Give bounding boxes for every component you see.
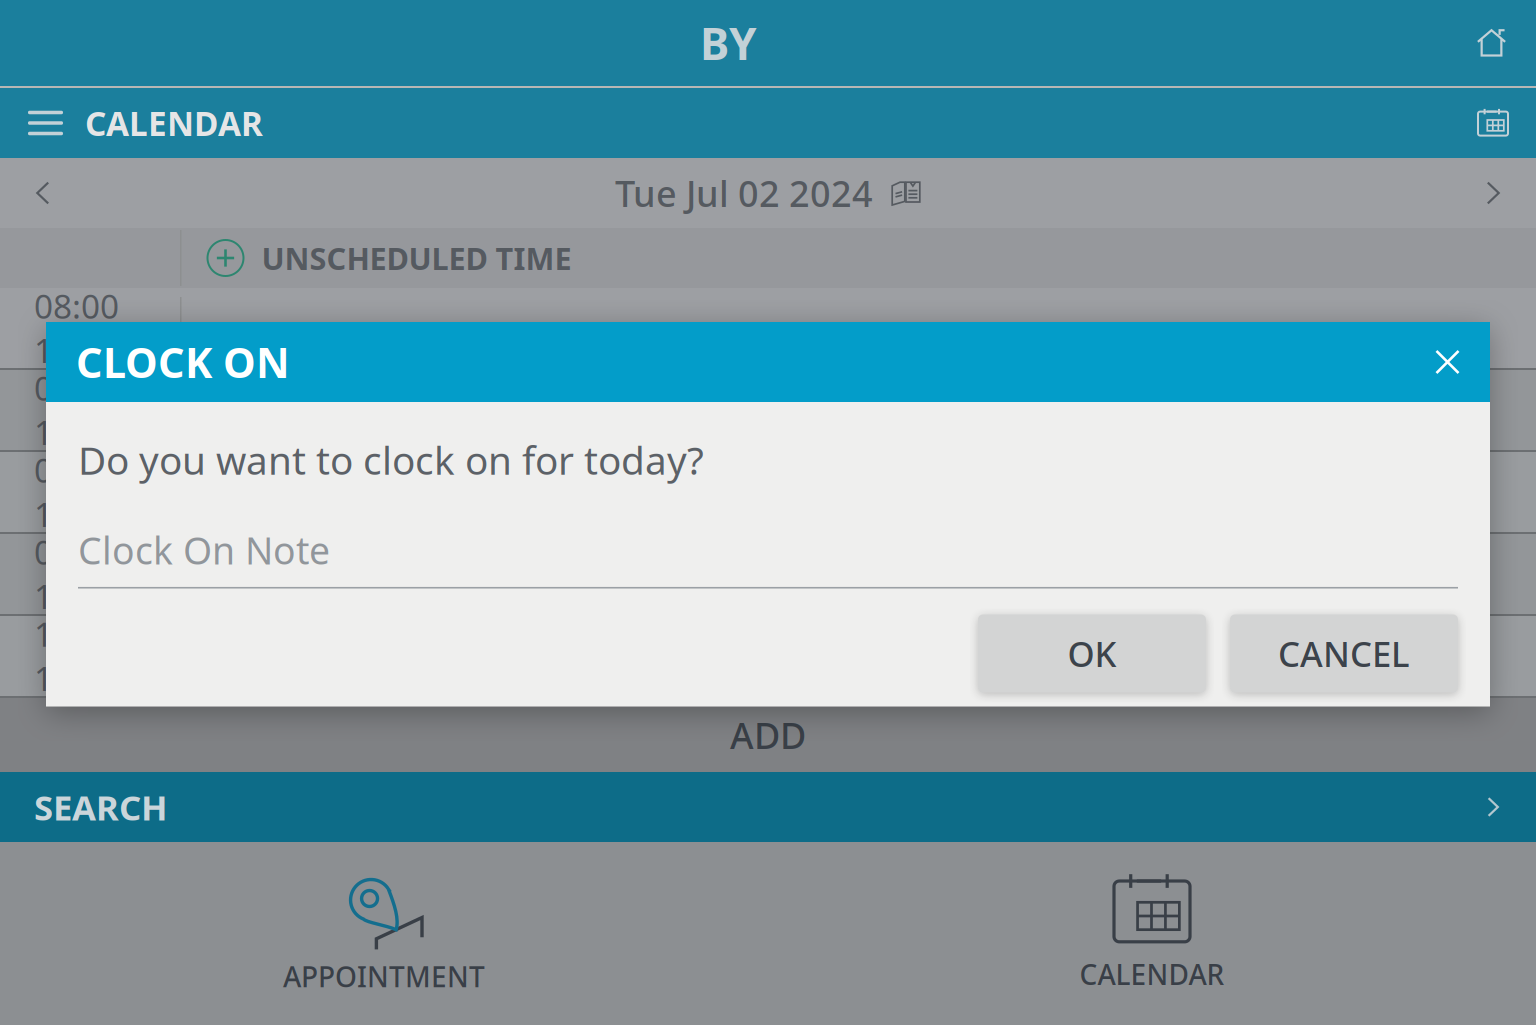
button[interactable]: CANCEL: [1230, 614, 1458, 692]
staticText: SEARCH: [34, 784, 168, 830]
button[interactable]: Expand search: [1462, 772, 1536, 842]
staticText: CALENDAR: [1079, 956, 1224, 993]
staticText: UNSCHEDULED TIME: [261, 238, 571, 278]
staticText: Do you want to clock on for today?: [78, 434, 704, 485]
button[interactable]: CALENDAR: [768, 874, 1536, 993]
button[interactable]: Previous day: [0, 158, 78, 228]
staticText: 16:30: [34, 328, 119, 372]
button[interactable]: Add unscheduled time: [181, 224, 261, 292]
staticText: APPOINTMENT: [283, 958, 485, 995]
staticText: Clock On Note: [78, 525, 330, 575]
staticText: OK: [1067, 630, 1116, 676]
button[interactable]: OK: [978, 614, 1206, 692]
staticText: 18:00: [34, 574, 119, 618]
staticText: 09:30: [34, 530, 119, 574]
staticText: ADD: [730, 711, 806, 759]
staticText: Tue Jul 02 2024: [615, 169, 873, 217]
staticText: 18:30: [34, 656, 119, 700]
staticText: CLOCK ON: [76, 335, 290, 389]
staticText: 08:30: [34, 366, 119, 410]
staticText: CANCEL: [1278, 630, 1410, 676]
button[interactable]: Next day: [1458, 158, 1536, 228]
staticText: 09:00: [34, 448, 119, 492]
button[interactable]: Day notes: [873, 178, 921, 208]
button[interactable]: 10:00: [0, 616, 1536, 696]
button[interactable]: Pick date: [1458, 88, 1536, 158]
staticText: 17:00: [34, 410, 119, 454]
button[interactable]: 08:30: [0, 370, 1536, 450]
button[interactable]: 08:00: [0, 288, 1536, 368]
button[interactable]: Home: [1457, 0, 1536, 86]
staticText: 17:30: [34, 492, 119, 536]
button[interactable]: ADD: [0, 698, 1536, 772]
staticText: 08:00: [34, 284, 119, 328]
button[interactable]: Menu: [0, 88, 85, 158]
staticText: 10:00: [34, 612, 119, 656]
button[interactable]: Close: [1413, 322, 1490, 402]
button[interactable]: APPOINTMENT: [0, 872, 768, 995]
button[interactable]: 09:00: [0, 452, 1536, 532]
staticText: CALENDAR: [85, 101, 263, 145]
staticText: BY: [700, 14, 757, 72]
button[interactable]: 09:30: [0, 534, 1536, 614]
